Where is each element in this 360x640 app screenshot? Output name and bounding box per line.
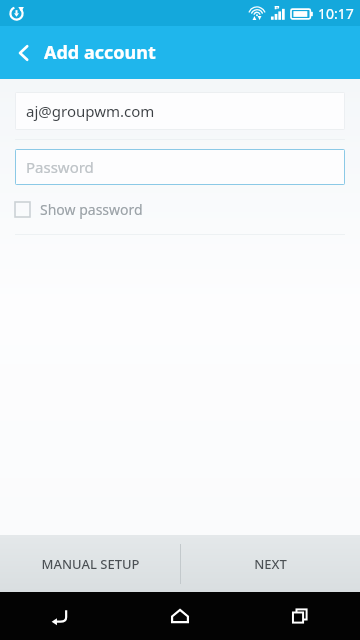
- button[interactable]: Recent apps: [240, 592, 360, 640]
- staticText: Add account: [44, 40, 156, 65]
- staticText: MANUAL SETUP: [41, 555, 140, 573]
- staticText: 10:17: [318, 4, 354, 23]
- staticText: NEXT: [254, 555, 287, 573]
- staticText: aj@groupwm.com: [26, 101, 155, 121]
- button[interactable]: Home: [120, 592, 240, 640]
- button[interactable]: Back: [0, 592, 120, 640]
- button[interactable]: Password: [15, 149, 345, 185]
- button[interactable]: NEXT: [180, 535, 360, 592]
- button[interactable]: aj@groupwm.com: [15, 92, 345, 130]
- button[interactable]: Back: [0, 29, 48, 77]
- button[interactable]: MANUAL SETUP: [0, 535, 180, 592]
- staticText: Show password: [40, 200, 143, 219]
- staticText: Password: [26, 157, 94, 177]
- button[interactable]: Show password: [15, 196, 345, 222]
